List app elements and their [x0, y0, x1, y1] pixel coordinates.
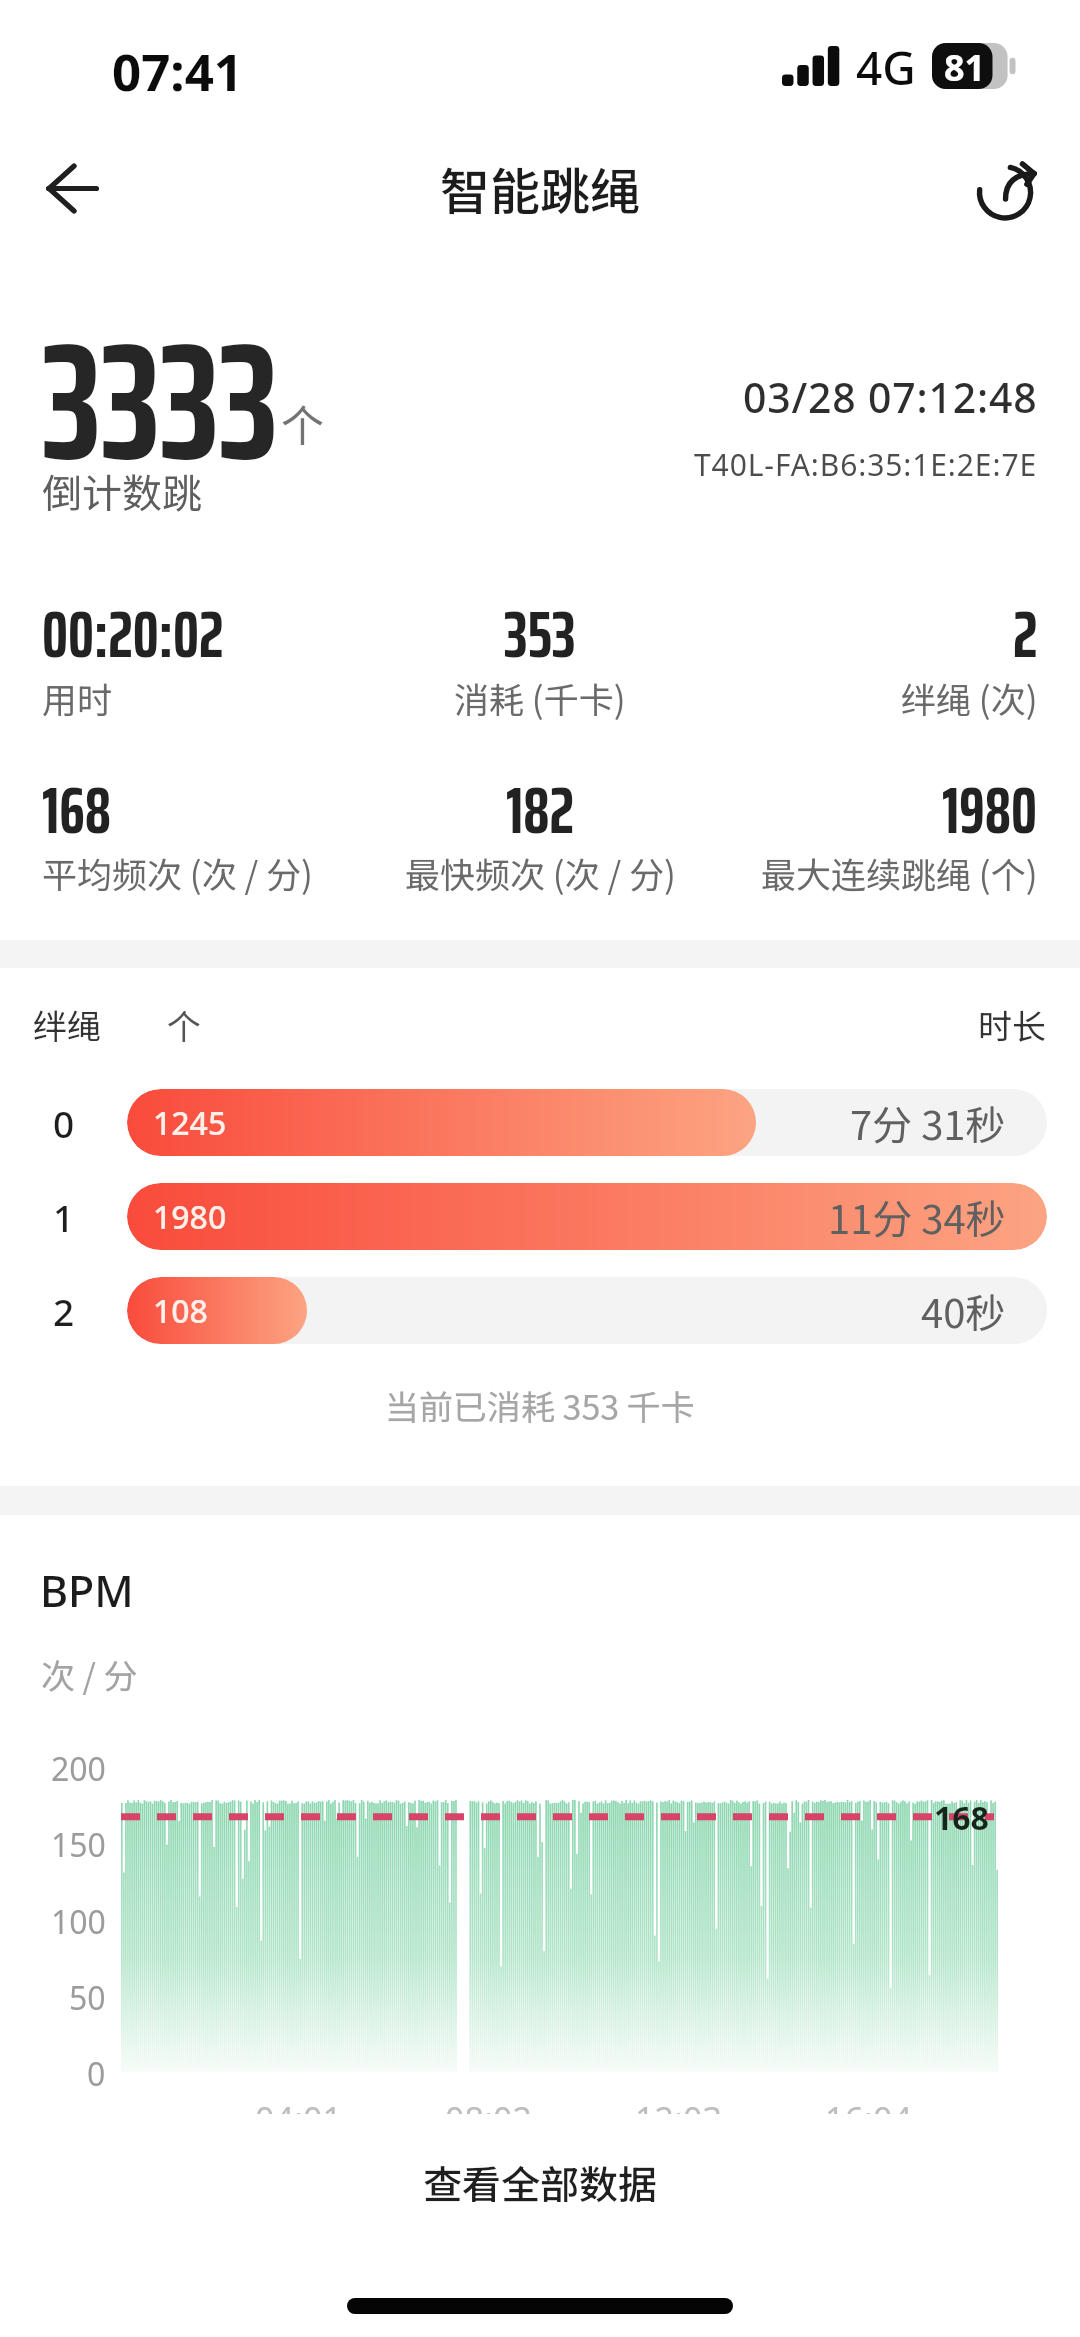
button[interactable]: Back: [22, 138, 122, 238]
staticText: 智能跳绳: [440, 152, 640, 224]
staticText: 绊绳: [33, 1000, 101, 1049]
staticText: 00:20:02: [42, 583, 224, 685]
staticText: 16:04: [825, 2096, 912, 2114]
staticText: 07:41: [112, 36, 244, 96]
staticText: 平均频次 (次 / 分): [42, 847, 313, 898]
staticText: 时长: [978, 1000, 1046, 1049]
staticText: 168: [42, 759, 112, 861]
staticText: 查看全部数据: [423, 2154, 658, 2210]
staticText: 03/28 07:12:48: [743, 369, 1038, 425]
staticText: 168: [934, 1796, 989, 1840]
button[interactable]: 查看全部数据: [0, 2132, 1080, 2232]
staticText: 108: [153, 1289, 208, 1333]
staticText: 81: [944, 43, 986, 89]
staticText: BPM: [40, 1561, 134, 1620]
staticText: 用时: [42, 672, 113, 723]
staticText: 最大连续跳绳 (个): [761, 847, 1038, 898]
staticText: 倒计数跳: [42, 462, 202, 520]
staticText: 1980: [942, 759, 1038, 861]
button[interactable]: Refresh: [958, 138, 1058, 238]
staticText: 次 / 分: [41, 1650, 138, 1699]
staticText: 12:03: [635, 2096, 722, 2114]
staticText: 消耗 (千卡): [454, 672, 626, 723]
staticText: 1980: [153, 1195, 227, 1239]
staticText: 个: [281, 392, 324, 454]
staticText: 100: [51, 1900, 106, 1944]
staticText: 4G: [856, 36, 916, 96]
staticText: 40秒: [921, 1282, 1006, 1340]
staticText: 11分 34秒: [828, 1188, 1006, 1246]
staticText: 200: [51, 1747, 106, 1791]
staticText: 2: [1013, 583, 1038, 685]
staticText: 绊绳 (次): [901, 672, 1038, 723]
staticText: 353: [504, 583, 576, 685]
staticText: 个: [167, 1000, 201, 1049]
staticText: 04:01: [255, 2096, 342, 2114]
staticText: 1245: [153, 1101, 227, 1145]
staticText: 当前已消耗 353 千卡: [385, 1381, 695, 1430]
staticText: 3333: [42, 274, 279, 531]
staticText: 1: [53, 1192, 75, 1242]
staticText: 150: [51, 1823, 106, 1867]
staticText: 7分 31秒: [850, 1094, 1006, 1152]
staticText: 182: [506, 759, 575, 861]
staticText: 2: [53, 1286, 75, 1336]
staticText: T40L-FA:B6:35:1E:2E:7E: [694, 444, 1038, 485]
staticText: 0: [87, 2052, 106, 2096]
staticText: 0: [53, 1098, 75, 1148]
staticText: 最快频次 (次 / 分): [405, 847, 676, 898]
staticText: 08:02: [445, 2096, 532, 2114]
staticText: 50: [69, 1976, 106, 2020]
